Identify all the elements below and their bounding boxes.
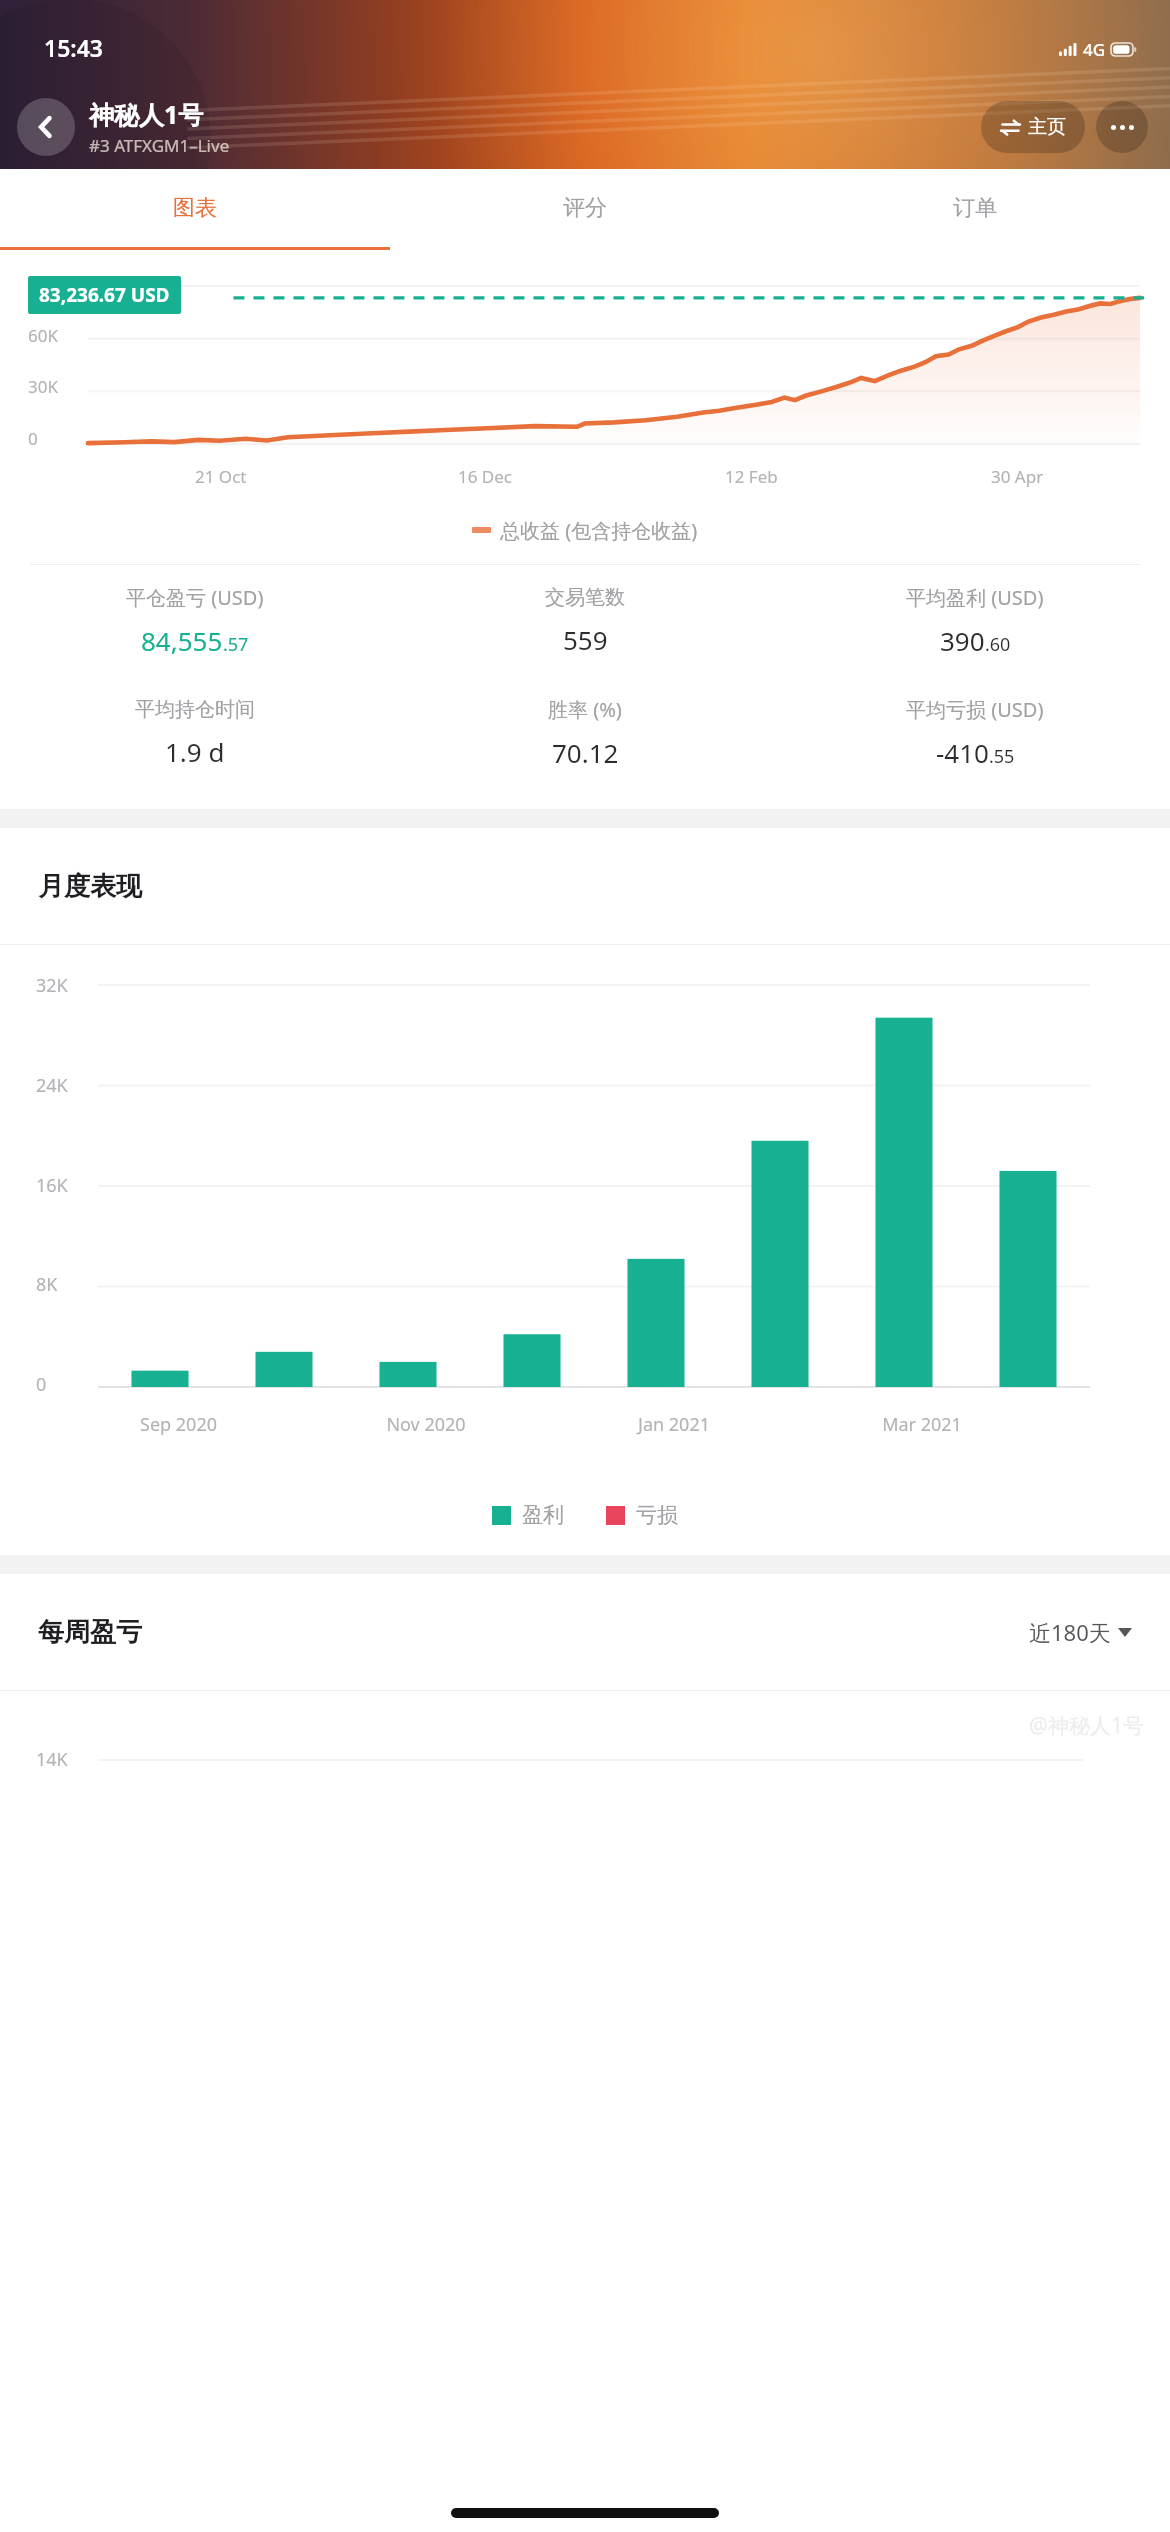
staticText: 21 Oct xyxy=(195,465,247,488)
staticText: 90K xyxy=(28,272,58,295)
staticText: .55 xyxy=(989,744,1015,769)
staticText: @神秘人1号 xyxy=(1029,1711,1144,1740)
staticText: 390 xyxy=(940,623,985,658)
staticText: 70.12 xyxy=(552,735,619,770)
staticText: 32K xyxy=(36,973,68,998)
staticText: 15:43 xyxy=(44,32,103,63)
staticText: 神秘人1号 xyxy=(89,97,204,131)
staticText: Mar 2021 xyxy=(882,1412,962,1437)
button[interactable]: 订单 xyxy=(780,169,1170,247)
staticText: 1.9 d xyxy=(165,734,225,769)
staticText: 订单 xyxy=(953,194,997,222)
staticText: Sep 2020 xyxy=(140,1412,217,1437)
staticText: 559 xyxy=(563,622,608,657)
staticText: #3 ATFXGM1–Live xyxy=(89,134,230,157)
staticText: 平均亏损 (USD) xyxy=(906,696,1044,723)
staticText: 亏损 xyxy=(636,1502,678,1528)
button[interactable]: 主页 xyxy=(981,101,1085,153)
staticText: 0 xyxy=(36,1372,47,1397)
staticText: 交易笔数 xyxy=(545,585,625,610)
staticText: .57 xyxy=(223,632,249,657)
staticText: 胜率 (%) xyxy=(548,696,622,723)
staticText: 12 Feb xyxy=(725,465,778,488)
staticText: 14K xyxy=(36,1747,68,1772)
staticText: 16 Dec xyxy=(458,465,513,488)
staticText: Nov 2020 xyxy=(386,1412,466,1437)
staticText: 30K xyxy=(28,375,58,398)
staticText: 4G xyxy=(1083,38,1106,61)
staticText: 盈利 xyxy=(522,1502,564,1528)
button[interactable]: 近180天 xyxy=(1029,1617,1132,1647)
staticText: Jan 2021 xyxy=(638,1412,710,1437)
staticText: .60 xyxy=(985,632,1011,657)
staticText: 平仓盈亏 (USD) xyxy=(126,584,264,611)
staticText: 16K xyxy=(36,1173,68,1198)
staticText: 月度表现 xyxy=(38,870,1132,903)
button[interactable]: More options xyxy=(1096,101,1148,153)
staticText: 评分 xyxy=(563,194,607,222)
staticText: 8K xyxy=(36,1272,58,1297)
staticText: 每周盈亏 xyxy=(38,1616,1029,1649)
staticText: 近180天 xyxy=(1029,1617,1111,1647)
staticText: 84,555 xyxy=(141,623,223,658)
staticText: 0 xyxy=(28,427,38,450)
staticText: 主页 xyxy=(1028,115,1066,139)
button[interactable]: 图表 xyxy=(0,169,390,247)
staticText: 图表 xyxy=(173,194,217,222)
staticText: 24K xyxy=(36,1073,68,1098)
staticText: 总收益 (包含持仓收益) xyxy=(500,517,698,544)
staticText: 60K xyxy=(28,324,58,347)
staticText: 平均盈利 (USD) xyxy=(906,584,1044,611)
button[interactable]: 评分 xyxy=(390,169,780,247)
staticText: -410 xyxy=(936,735,989,770)
button[interactable]: Back xyxy=(17,98,75,156)
staticText: 平均持仓时间 xyxy=(135,697,255,722)
staticText: 30 Apr xyxy=(991,465,1044,488)
staticText: 83,236.67 USD xyxy=(39,282,170,308)
